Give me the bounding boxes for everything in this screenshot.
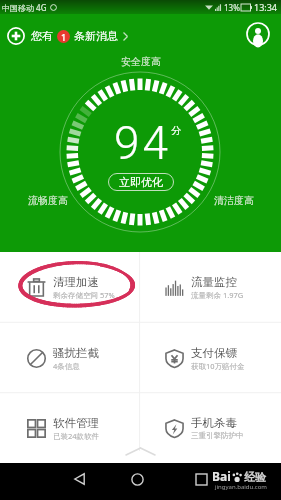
staticText: 13:34	[254, 1, 278, 13]
button[interactable]: 软件管理	[0, 393, 140, 463]
staticText: 手机杀毒	[191, 416, 237, 430]
staticText: 安全度高	[121, 55, 161, 68]
button[interactable]: Home	[124, 466, 150, 492]
staticText: 软件管理	[53, 416, 99, 430]
staticText: Bai	[212, 468, 231, 484]
staticText: 已装24款软件	[53, 431, 100, 441]
staticText: 骚扰拦截	[53, 346, 99, 360]
staticText: 条新消息	[74, 29, 118, 43]
staticText: 流量剩余 1.97G	[191, 290, 244, 300]
staticText: jingyan.baidu.com	[215, 483, 267, 491]
button[interactable]: 骚扰拦截	[0, 323, 140, 393]
staticText: 清理加速	[53, 275, 99, 289]
staticText: 中国移动 4G	[2, 2, 47, 13]
staticText: 13%	[224, 2, 240, 13]
staticText: 获取10万赔付金	[191, 361, 245, 371]
staticText: 94	[114, 116, 172, 170]
button[interactable]: Account	[246, 22, 270, 46]
button[interactable]: Recents	[188, 466, 214, 492]
staticText: 三重引擎防护中	[191, 431, 244, 440]
button[interactable]: 立即优化	[108, 173, 174, 191]
staticText: 立即优化	[119, 175, 163, 189]
staticText: 分	[171, 124, 181, 137]
staticText: 经验	[244, 470, 266, 484]
button[interactable]: 支付保镖	[140, 323, 281, 393]
staticText: 您有	[31, 29, 53, 43]
button[interactable]: 流量监控	[140, 252, 281, 323]
button[interactable]: Back	[66, 466, 92, 492]
button[interactable]: 手机杀毒	[140, 393, 281, 463]
staticText: 清洁度高	[214, 194, 254, 207]
button[interactable]: 您有	[7, 27, 128, 45]
staticText: 支付保镖	[191, 346, 237, 360]
staticText: 流畅度高	[28, 194, 68, 207]
staticText: 剩余存储空间 57%	[53, 290, 115, 300]
button[interactable]: 清理加速	[0, 252, 140, 323]
staticText: 1	[61, 31, 67, 43]
staticText: 流量监控	[191, 275, 237, 289]
staticText: 4条信息	[53, 361, 80, 371]
